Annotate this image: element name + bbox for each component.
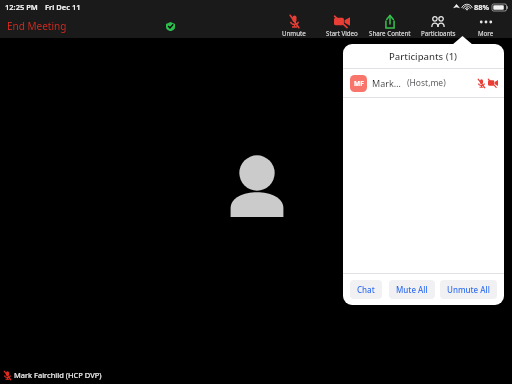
staticText: More bbox=[478, 29, 494, 36]
staticText: (Host,me) bbox=[407, 77, 446, 89]
button[interactable]: Participants bbox=[414, 13, 462, 38]
button[interactable]: Start Video bbox=[318, 13, 366, 38]
staticText: Chat bbox=[357, 284, 375, 295]
staticText: Start Video bbox=[326, 29, 358, 36]
staticText: Participants (1) bbox=[389, 50, 458, 63]
button[interactable]: MF bbox=[343, 69, 504, 97]
button[interactable]: More bbox=[462, 13, 510, 38]
button[interactable]: Mute All bbox=[389, 280, 435, 299]
button[interactable]: Unmute All bbox=[440, 280, 497, 299]
staticText: Share Content bbox=[369, 29, 411, 36]
staticText: Mark Fairchild (HCP DVP) bbox=[14, 370, 102, 380]
staticText: End Meeting bbox=[7, 19, 67, 33]
button[interactable]: End Meeting bbox=[0, 16, 74, 36]
button[interactable]: Unmute bbox=[270, 13, 318, 38]
staticText: MF bbox=[354, 79, 364, 88]
staticText: Unmute bbox=[282, 29, 306, 36]
button[interactable]: Chat bbox=[350, 280, 382, 299]
staticText: Participants bbox=[421, 29, 456, 36]
staticText: Fri Dec 11 bbox=[45, 2, 81, 12]
staticText: Unmute All bbox=[447, 284, 490, 295]
staticText: 88% bbox=[474, 2, 490, 12]
staticText: 12:25 PM bbox=[5, 2, 38, 12]
button[interactable]: Meeting encrypted bbox=[164, 20, 176, 32]
staticText: Mute All bbox=[396, 284, 428, 295]
button[interactable]: Share Content bbox=[366, 13, 414, 38]
staticText: Mark Fairchil... bbox=[372, 77, 403, 89]
